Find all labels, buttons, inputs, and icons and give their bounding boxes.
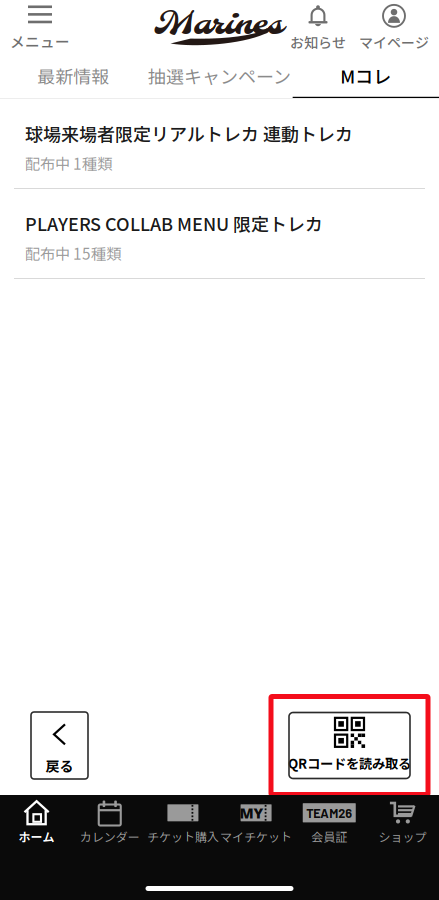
staticText: カレンダー: [80, 828, 140, 845]
button[interactable]: チケット購入: [146, 795, 219, 852]
button[interactable]: MY: [219, 795, 293, 852]
button[interactable]: Mコレ: [293, 56, 439, 98]
staticText: チケット購入: [147, 828, 219, 845]
button[interactable]: 最新情報: [0, 56, 146, 98]
staticText: Marines: [155, 5, 283, 45]
staticText: Mコレ: [340, 63, 391, 89]
staticText: 会員証: [311, 828, 347, 845]
button[interactable]: マイページ: [355, 3, 433, 53]
staticText: お知らせ: [290, 32, 346, 52]
button[interactable]: TEAM26: [293, 795, 366, 852]
button[interactable]: メニュー: [0, 3, 80, 53]
button[interactable]: PLAYERS COLLAB MENU 限定トレカ: [0, 189, 439, 278]
staticText: ショップ: [378, 828, 426, 845]
staticText: 抽選キャンペーン: [148, 63, 291, 89]
button[interactable]: ショップ: [366, 795, 439, 852]
button[interactable]: カレンダー: [73, 795, 146, 852]
button[interactable]: 戻る: [31, 712, 88, 779]
button[interactable]: 球場来場者限定リアルトレカ 連動トレカ: [0, 99, 439, 188]
staticText: 最新情報: [37, 63, 109, 89]
staticText: 球場来場者限定リアルトレカ 連動トレカ: [25, 120, 353, 146]
staticText: 戻る: [45, 755, 73, 776]
staticText: PLAYERS COLLAB MENU 限定トレカ: [25, 210, 323, 236]
staticText: マイページ: [359, 32, 429, 52]
staticText: マイチケット: [220, 828, 292, 845]
staticText: メニュー: [10, 30, 70, 52]
staticText: QRコードを読み取る: [288, 753, 411, 773]
staticText: TEAM26: [306, 805, 352, 820]
staticText: 配布中 15種類: [25, 242, 121, 264]
button[interactable]: ホーム: [0, 795, 73, 852]
staticText: MY: [240, 803, 264, 823]
staticText: 配布中 1種類: [25, 152, 112, 174]
button[interactable]: QRコードを読み取る: [271, 696, 428, 794]
button[interactable]: お知らせ: [286, 3, 350, 53]
staticText: ホーム: [19, 828, 55, 845]
button[interactable]: 抽選キャンペーン: [146, 56, 293, 98]
